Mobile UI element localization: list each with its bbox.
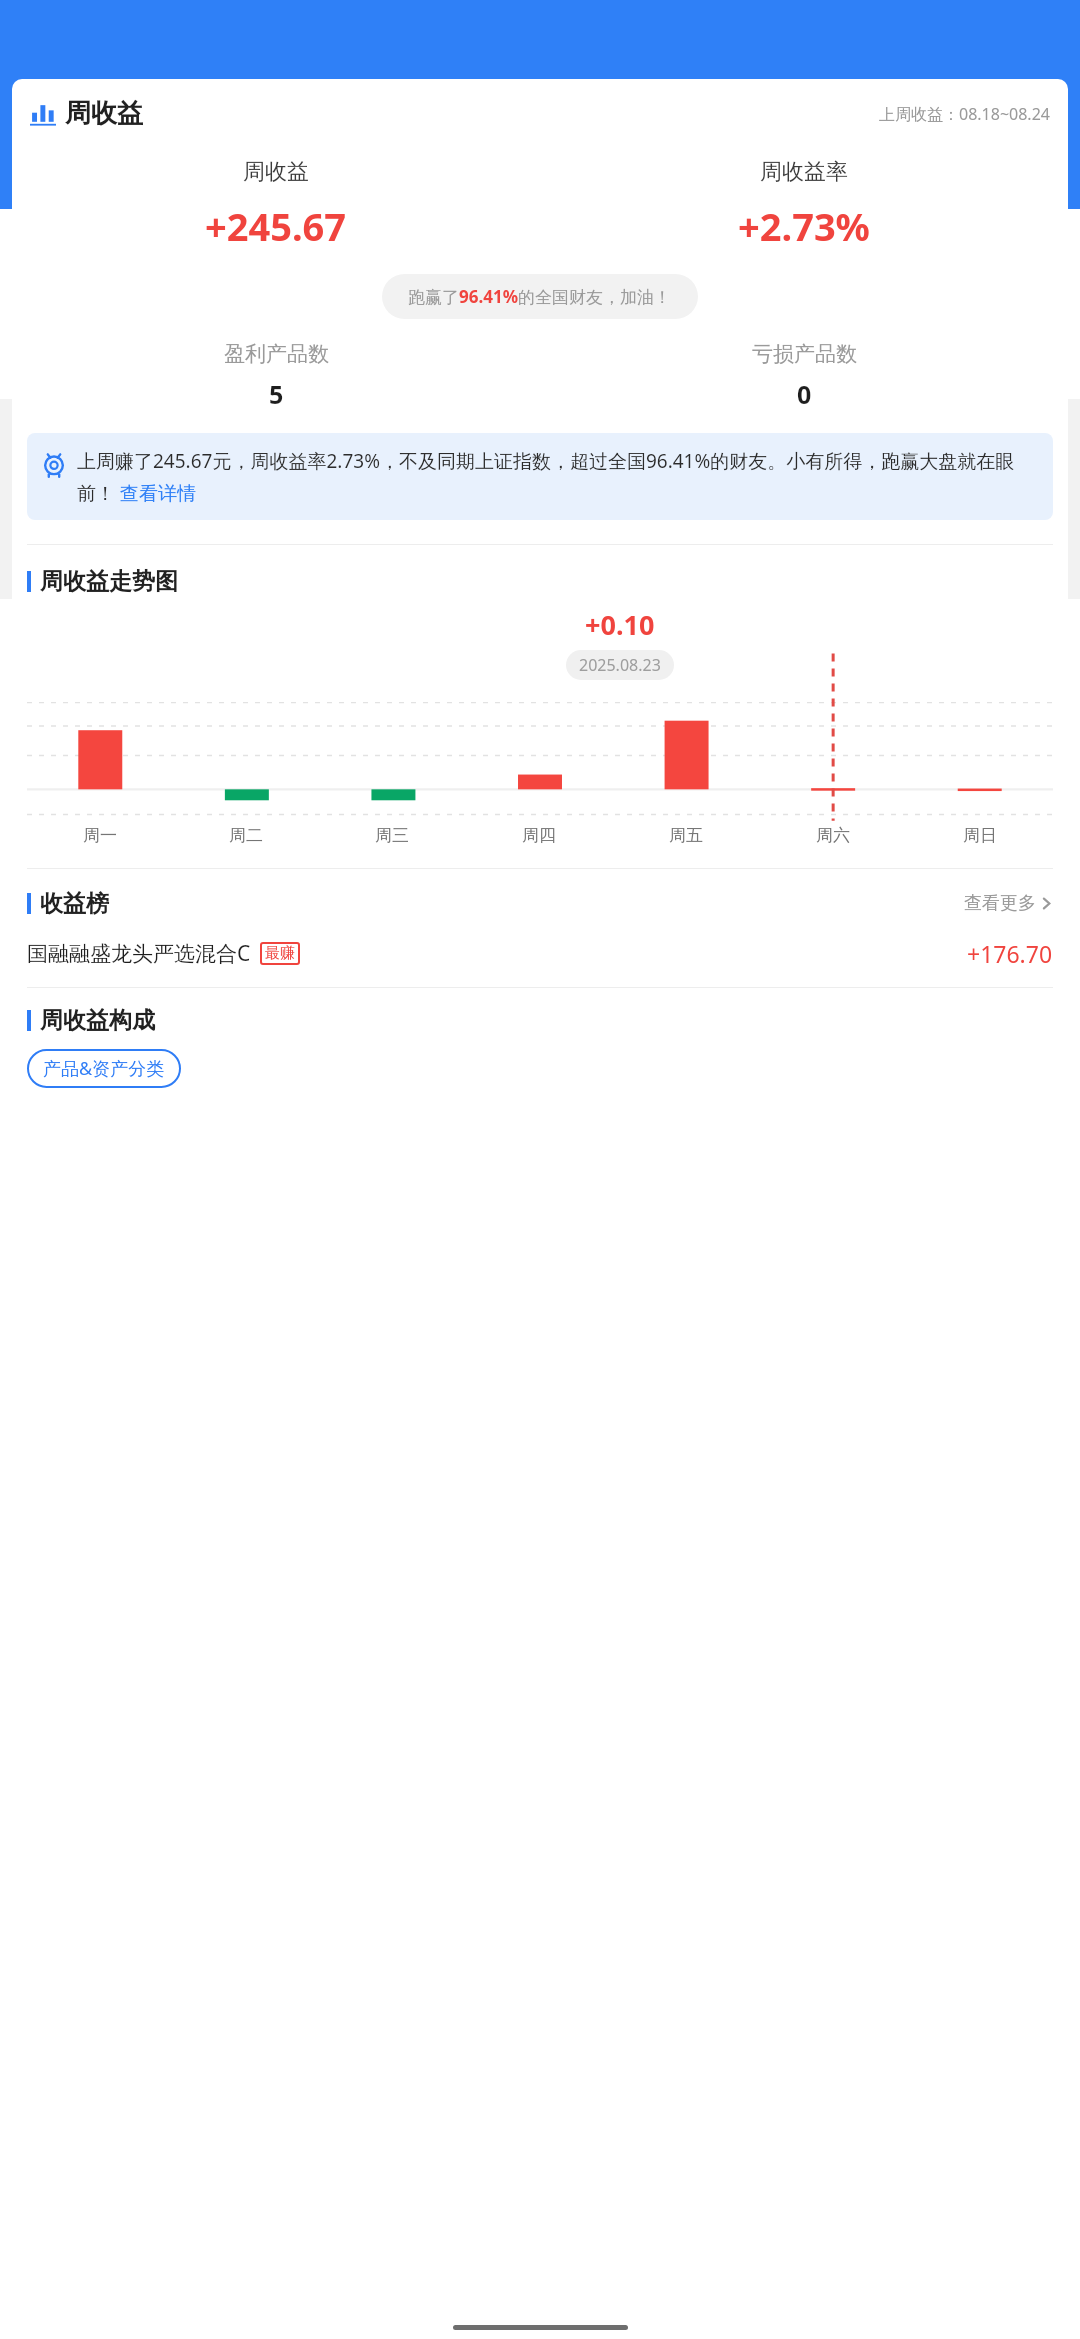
staticText: 上周赚了245.67元，周收益率2.73%，不及同期上证指数，超过全国96.41… [77,448,1039,505]
staticText: 国融融盛龙头严选混合C [27,939,251,968]
staticText: +0.10 [585,606,655,643]
button[interactable]: 跑赢了96.41%的全国财友，加油！ [382,274,698,319]
staticText: 亏损产品数 [752,341,857,367]
button[interactable]: 上周赚了245.67元，周收益率2.73%，不及同期上证指数，超过全国96.41… [27,433,1053,520]
staticText: 2025.08.23 [579,654,661,676]
staticText: 跑赢了96.41%的全国财友，加油！ [408,285,672,308]
button[interactable]: Back [0,90,72,162]
staticText: 理财周报 [78,109,186,143]
staticText: 周收益走势图 [40,567,178,596]
staticText: 最赚 [265,944,295,963]
staticText: 周收益 [243,158,309,186]
staticText: 周三 [375,825,409,846]
staticText: 0 [797,377,812,411]
staticText: 周收益构成 [40,1006,155,1035]
staticText: +245.67 [205,200,347,252]
staticText: +176.70 [967,938,1053,969]
staticText: 周五 [669,825,703,846]
staticText: +2.73% [738,200,870,252]
staticText: 查看更多 [964,892,1036,915]
staticText: 产品&资产分类 [43,1056,165,1081]
staticText: 收益榜 [40,889,109,918]
staticText: 周日 [963,825,997,846]
staticText: 周二 [229,825,263,846]
staticText: 周收益率 [760,158,848,186]
staticText: 周收益 [65,97,143,130]
staticText: 上周收益：08.18~08.24 [879,103,1050,125]
staticText: 周六 [816,825,850,846]
staticText: 5 [269,377,284,411]
staticText: 周一 [83,825,117,846]
staticText: 盈利产品数 [224,341,329,367]
staticText: 周四 [522,825,556,846]
button[interactable]: 国融融盛龙头严选混合C [12,938,1068,969]
button[interactable]: 产品&资产分类 [27,1049,181,1088]
button[interactable]: 查看更多 [964,892,1053,915]
